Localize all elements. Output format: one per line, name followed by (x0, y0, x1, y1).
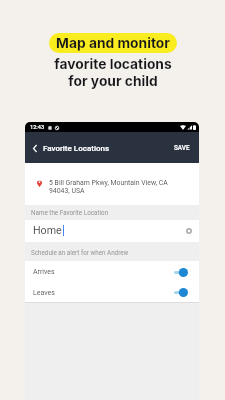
button[interactable]: SAVE (165, 137, 199, 159)
button[interactable]: Clear text (186, 228, 192, 234)
staticText: Schedule an alert for when Andrew (31, 249, 129, 256)
button[interactable]: Back (28, 141, 42, 155)
staticText: Home (33, 224, 62, 237)
staticText: 5 Bill Graham Pkwy, Mountain View, CA 94… (49, 179, 168, 195)
staticText: Name the Favorite Location (31, 209, 109, 216)
staticText: Leaves (33, 289, 55, 297)
staticText: for your child (68, 73, 158, 90)
staticText: SAVE (174, 144, 190, 152)
button[interactable]: Arrives (25, 261, 199, 283)
staticText: Map and monitor (56, 35, 170, 52)
staticText: Arrives (33, 268, 55, 276)
staticText: Favorite Locations (43, 144, 110, 153)
button[interactable]: Leaves (25, 282, 199, 303)
staticText: 12:43 (30, 124, 45, 131)
staticText: favorite locations (54, 56, 172, 73)
